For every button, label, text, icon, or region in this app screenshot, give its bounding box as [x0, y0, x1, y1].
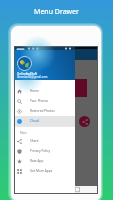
- button[interactable]: Share: [79, 116, 90, 127]
- staticText: Cloud: [30, 119, 39, 123]
- staticText: More: [20, 131, 27, 135]
- staticText: Your Photos: [30, 99, 49, 103]
- staticText: Restored Photos: [30, 109, 55, 113]
- staticText: Privacy Policy: [30, 149, 51, 153]
- button[interactable]: Privacy Policy: [15, 146, 75, 156]
- button[interactable]: Rate App: [15, 156, 75, 166]
- staticText: Share: [30, 139, 39, 143]
- staticText: Get More Apps: [30, 169, 53, 173]
- staticText: Rate App: [30, 159, 44, 163]
- staticText: Menu Drawer: [34, 7, 79, 17]
- button[interactable]: Share: [15, 136, 75, 146]
- button[interactable]: Your Photos: [15, 96, 75, 106]
- button[interactable]: Home: [15, 86, 75, 96]
- staticText: Home: [30, 89, 40, 93]
- staticText: librarian94@gmail.com: [17, 75, 48, 79]
- staticText: UnlimitedSoft: [17, 72, 37, 76]
- button[interactable]: Restored Photos: [15, 106, 75, 116]
- button[interactable]: Get More Apps: [15, 166, 75, 176]
- button[interactable]: Cloud: [15, 116, 75, 126]
